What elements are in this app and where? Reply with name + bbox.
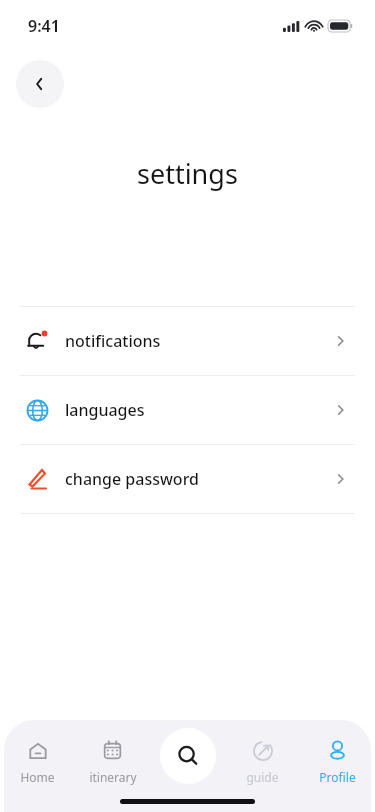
staticText: guide [246,769,279,785]
button[interactable]: Home [0,734,75,789]
button[interactable]: notifications [0,307,375,375]
button[interactable]: itinerary [75,734,150,789]
staticText: languages [65,399,333,421]
staticText: notifications [65,330,333,352]
staticText: change password [65,468,333,490]
staticText: 9:41 [28,15,60,37]
button[interactable]: change password [0,445,375,513]
button[interactable]: Search [160,728,216,784]
staticText: itinerary [89,769,137,785]
button[interactable]: guide [225,734,300,789]
button[interactable]: Back [16,60,64,108]
staticText: settings [137,155,238,192]
staticText: Home [20,769,55,785]
button[interactable]: languages [0,376,375,444]
staticText: Profile [319,769,356,785]
button[interactable]: Profile [300,734,375,789]
